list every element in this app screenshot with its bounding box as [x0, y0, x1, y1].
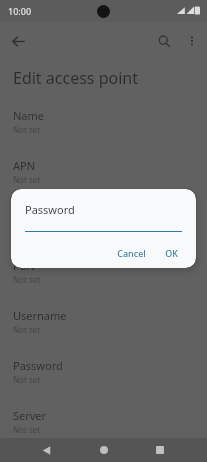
staticText: Not set: [13, 124, 41, 135]
button[interactable]: OK: [160, 244, 183, 262]
staticText: OK: [165, 247, 178, 259]
button[interactable]: Navigate up: [3, 26, 33, 56]
button[interactable]: Name: [0, 103, 207, 140]
button[interactable]: More options: [178, 27, 206, 55]
staticText: Edit access point: [13, 67, 138, 89]
staticText: Port: [13, 258, 35, 273]
button[interactable]: Search: [150, 27, 178, 55]
button[interactable]: Cancel: [112, 244, 151, 262]
button[interactable]: Recent apps: [148, 438, 172, 462]
staticText: Not set: [13, 424, 41, 435]
staticText: Cancel: [117, 247, 146, 259]
staticText: Not set: [13, 324, 41, 335]
staticText: Username: [13, 308, 67, 323]
button[interactable]: Home: [92, 438, 116, 462]
button[interactable]: APN: [0, 153, 207, 190]
staticText: Proxy: [13, 208, 42, 223]
staticText: 10:00: [8, 5, 32, 17]
button[interactable]: Server: [0, 403, 207, 440]
button[interactable]: Back: [34, 438, 58, 462]
button[interactable]: Port: [0, 253, 207, 290]
staticText: Not set: [13, 274, 41, 285]
button[interactable]: Proxy: [0, 203, 207, 240]
button[interactable]: MMSC: [0, 453, 207, 462]
staticText: Not set: [13, 374, 41, 385]
button[interactable]: Username: [0, 303, 207, 340]
staticText: Server: [13, 408, 47, 423]
staticText: Password: [25, 202, 75, 217]
staticText: Name: [13, 108, 45, 123]
staticText: Not set: [13, 174, 41, 185]
staticText: Password: [13, 358, 63, 373]
staticText: Not set: [13, 224, 41, 235]
staticText: APN: [13, 158, 36, 173]
button[interactable]: Password: [0, 353, 207, 390]
